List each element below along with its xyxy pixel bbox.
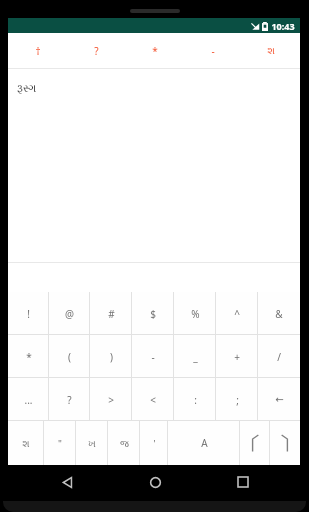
- staticText: !: [27, 307, 30, 321]
- button[interactable]: *: [126, 33, 184, 68]
- staticText: (: [68, 350, 71, 364]
- button[interactable]: Space: [168, 421, 240, 465]
- button[interactable]: #: [90, 292, 132, 335]
- button[interactable]: &: [258, 292, 300, 335]
- staticText: #: [108, 307, 115, 321]
- button[interactable]: /: [258, 335, 300, 378]
- staticText: ^: [234, 307, 240, 321]
- staticText: ): [110, 350, 113, 364]
- button[interactable]: ?: [49, 378, 90, 421]
- button[interactable]: ...: [8, 378, 49, 421]
- button[interactable]: :: [174, 378, 216, 421]
- staticText: શ: [22, 439, 30, 448]
- staticText: /: [277, 350, 281, 364]
- staticText: %: [191, 307, 200, 321]
- button[interactable]: ": [44, 421, 76, 465]
- button[interactable]: Recent apps: [221, 465, 265, 499]
- staticText: <: [150, 393, 156, 407]
- button[interactable]: ): [90, 335, 132, 378]
- button[interactable]: _: [174, 335, 216, 378]
- button[interactable]: ': [140, 421, 168, 465]
- button[interactable]: -: [132, 335, 174, 378]
- button[interactable]: રૂસ્ગ: [8, 69, 300, 107]
- staticText: ખ: [88, 439, 96, 448]
- button[interactable]: ;: [216, 378, 258, 421]
- staticText: 10:43: [271, 20, 295, 32]
- button[interactable]: Back: [45, 465, 89, 499]
- button[interactable]: +: [216, 335, 258, 378]
- staticText: *: [152, 44, 158, 58]
- staticText: -: [211, 44, 215, 58]
- button[interactable]: †: [8, 33, 67, 68]
- button[interactable]: @: [49, 292, 90, 335]
- staticText: ?: [94, 44, 99, 58]
- button[interactable]: -: [184, 33, 242, 68]
- button[interactable]: %: [174, 292, 216, 335]
- staticText: :: [194, 393, 197, 407]
- button[interactable]: <: [132, 378, 174, 421]
- staticText: ;: [236, 393, 239, 407]
- staticText: શ: [267, 46, 275, 56]
- staticText: †: [35, 44, 41, 58]
- button[interactable]: [270, 421, 300, 465]
- button[interactable]: ←: [258, 378, 300, 421]
- button[interactable]: >: [90, 378, 132, 421]
- staticText: -: [151, 350, 155, 364]
- button[interactable]: $: [132, 292, 174, 335]
- button[interactable]: જ: [108, 421, 140, 465]
- staticText: >: [108, 393, 114, 407]
- button[interactable]: ?: [67, 33, 126, 68]
- button[interactable]: Home: [133, 465, 177, 499]
- staticText: _: [193, 350, 198, 364]
- button[interactable]: શ: [8, 421, 44, 465]
- staticText: ': [153, 437, 156, 450]
- button[interactable]: ^: [216, 292, 258, 335]
- staticText: *: [26, 350, 32, 364]
- staticText: રૂસ્ગ: [17, 83, 37, 94]
- button[interactable]: *: [8, 335, 49, 378]
- button[interactable]: (: [49, 335, 90, 378]
- button[interactable]: !: [8, 292, 49, 335]
- staticText: ...: [24, 393, 33, 407]
- staticText: ": [58, 437, 62, 450]
- staticText: ←: [275, 394, 284, 406]
- staticText: &: [275, 307, 283, 321]
- staticText: ?: [67, 393, 72, 407]
- staticText: જ: [120, 439, 129, 448]
- button[interactable]: શ: [242, 33, 300, 68]
- staticText: @: [65, 307, 74, 321]
- staticText: $: [150, 307, 156, 321]
- button[interactable]: ખ: [76, 421, 108, 465]
- button[interactable]: [240, 421, 270, 465]
- staticText: +: [234, 350, 240, 364]
- staticText: A: [201, 436, 208, 450]
